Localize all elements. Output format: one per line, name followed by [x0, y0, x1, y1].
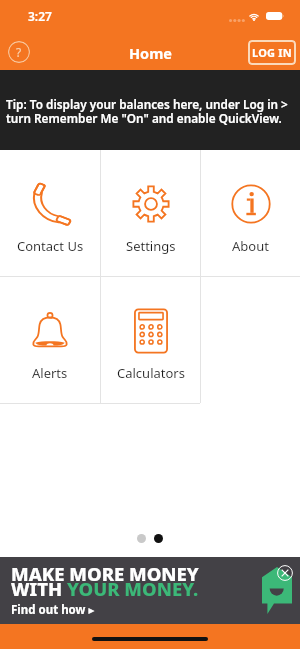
staticText: Find out how ▸ — [11, 602, 95, 618]
button[interactable]: Tip: To display your balances here, unde… — [0, 70, 300, 150]
staticText: YOUR MONEY. — [67, 576, 199, 601]
staticText: MAKE MORE MONEY — [11, 561, 199, 586]
staticText: Alerts — [32, 364, 68, 382]
staticText: 3:27 — [28, 8, 52, 24]
button[interactable]: About — [201, 150, 300, 276]
staticText: Settings — [126, 237, 176, 255]
staticText: ? — [16, 44, 22, 60]
staticText: Home — [129, 43, 172, 63]
staticText: Tip: To display your balances here, unde… — [6, 96, 288, 126]
button[interactable]: Contact Us — [0, 150, 100, 276]
staticText: About — [232, 237, 269, 255]
button[interactable]: Alerts — [0, 277, 100, 403]
button[interactable]: MAKE MORE MONEY — [0, 557, 300, 624]
button[interactable]: Close ad — [277, 565, 293, 581]
staticText: WITH — [11, 576, 67, 601]
staticText: LOG IN — [252, 45, 292, 60]
button[interactable]: Settings — [101, 150, 200, 276]
button[interactable]: LOG IN — [248, 40, 296, 65]
button[interactable]: Help — [8, 41, 30, 63]
staticText: Contact Us — [17, 237, 84, 255]
button[interactable]: Calculators — [101, 277, 200, 403]
staticText: Calculators — [117, 364, 185, 382]
